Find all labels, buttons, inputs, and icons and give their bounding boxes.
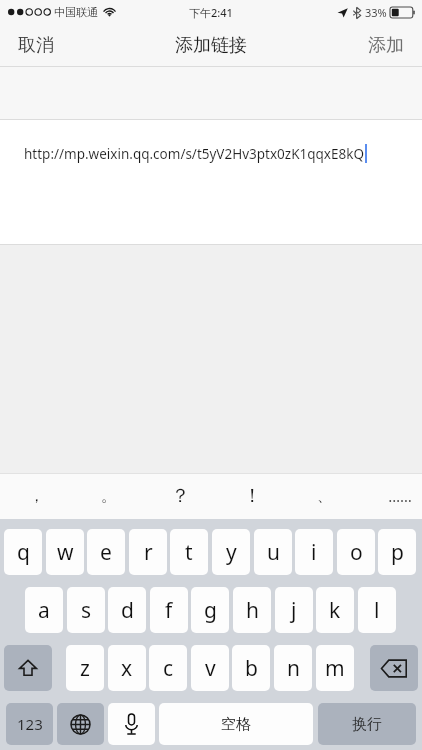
button[interactable]: ？ bbox=[150, 473, 210, 519]
button[interactable]: e bbox=[87, 529, 125, 575]
staticText: h bbox=[246, 596, 259, 625]
staticText: z bbox=[80, 654, 90, 683]
button[interactable]: p bbox=[378, 529, 416, 575]
button[interactable]: f bbox=[150, 587, 188, 633]
button[interactable]: q bbox=[4, 529, 42, 575]
button[interactable]: Shift bbox=[4, 645, 52, 691]
button[interactable]: 空格 bbox=[159, 703, 313, 745]
staticText: a bbox=[38, 596, 50, 625]
button[interactable]: g bbox=[191, 587, 229, 633]
staticText: 、 bbox=[317, 487, 332, 506]
staticText: m bbox=[325, 654, 345, 683]
staticText: g bbox=[204, 596, 217, 625]
button[interactable]: s bbox=[67, 587, 105, 633]
button[interactable]: Voice input bbox=[108, 703, 155, 745]
button[interactable]: u bbox=[254, 529, 292, 575]
button[interactable]: t bbox=[170, 529, 208, 575]
button[interactable]: 添加 bbox=[354, 28, 418, 63]
staticText: u bbox=[267, 538, 280, 567]
staticText: t bbox=[185, 538, 193, 567]
staticText: http://mp.weixin.qq.com/s/t5yV2Hv3ptx0zK… bbox=[24, 145, 364, 163]
staticText: 空格 bbox=[221, 715, 251, 734]
staticText: i bbox=[311, 538, 317, 567]
staticText: 添加 bbox=[368, 34, 404, 57]
staticText: v bbox=[205, 654, 216, 683]
button[interactable]: h bbox=[233, 587, 271, 633]
staticText: n bbox=[287, 654, 300, 683]
staticText: x bbox=[121, 654, 133, 683]
button[interactable]: z bbox=[66, 645, 104, 691]
button[interactable]: x bbox=[108, 645, 146, 691]
button[interactable]: o bbox=[337, 529, 375, 575]
button[interactable]: ， bbox=[6, 473, 66, 519]
button[interactable]: ！ bbox=[222, 473, 282, 519]
staticText: y bbox=[226, 538, 237, 567]
staticText: b bbox=[245, 654, 258, 683]
staticText: d bbox=[121, 596, 134, 625]
button[interactable]: y bbox=[212, 529, 250, 575]
button[interactable]: b bbox=[232, 645, 270, 691]
button[interactable]: c bbox=[149, 645, 187, 691]
button[interactable]: http://mp.weixin.qq.com/s/t5yV2Hv3ptx0zK… bbox=[0, 120, 422, 244]
button[interactable]: 取消 bbox=[4, 28, 68, 63]
staticText: w bbox=[57, 538, 74, 567]
button[interactable]: m bbox=[316, 645, 354, 691]
button[interactable]: a bbox=[25, 587, 63, 633]
button[interactable]: 123 bbox=[6, 703, 53, 745]
button[interactable]: 。 bbox=[78, 473, 138, 519]
button[interactable]: w bbox=[46, 529, 84, 575]
staticText: 取消 bbox=[18, 34, 54, 57]
button[interactable]: 换行 bbox=[318, 703, 416, 745]
button[interactable]: 、 bbox=[294, 473, 354, 519]
staticText: ， bbox=[29, 487, 44, 506]
staticText: 中国联通 bbox=[54, 5, 98, 19]
staticText: p bbox=[391, 538, 404, 567]
staticText: o bbox=[350, 538, 363, 567]
staticText: q bbox=[17, 538, 30, 567]
staticText: 。 bbox=[101, 487, 116, 506]
staticText: j bbox=[291, 596, 297, 625]
button[interactable]: …… bbox=[370, 473, 422, 519]
staticText: 33% bbox=[365, 5, 387, 20]
staticText: 添加链接 bbox=[175, 34, 247, 57]
staticText: 123 bbox=[17, 714, 43, 734]
staticText: r bbox=[144, 538, 153, 567]
staticText: 换行 bbox=[352, 715, 382, 734]
staticText: ？ bbox=[171, 484, 190, 508]
staticText: f bbox=[165, 596, 173, 625]
button[interactable]: n bbox=[274, 645, 312, 691]
staticText: ！ bbox=[243, 484, 262, 508]
staticText: k bbox=[329, 596, 341, 625]
button[interactable]: k bbox=[316, 587, 354, 633]
staticText: …… bbox=[388, 486, 412, 506]
staticText: 下午2:41 bbox=[189, 5, 233, 20]
staticText: l bbox=[374, 596, 380, 625]
button[interactable]: l bbox=[358, 587, 396, 633]
button[interactable]: i bbox=[295, 529, 333, 575]
button[interactable]: v bbox=[191, 645, 229, 691]
staticText: e bbox=[100, 538, 112, 567]
button[interactable]: d bbox=[108, 587, 146, 633]
button[interactable]: Backspace bbox=[370, 645, 418, 691]
button[interactable]: j bbox=[275, 587, 313, 633]
staticText: s bbox=[81, 596, 92, 625]
button[interactable]: r bbox=[129, 529, 167, 575]
staticText: c bbox=[163, 654, 174, 683]
button[interactable]: Switch keyboard language bbox=[57, 703, 104, 745]
